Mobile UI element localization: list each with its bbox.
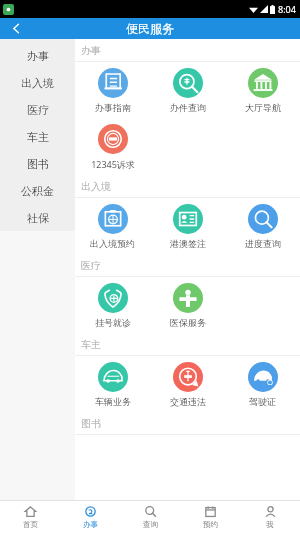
- button[interactable]: 我: [240, 501, 300, 533]
- staticText: 12345诉求: [91, 158, 135, 170]
- staticText: 便民服务: [126, 21, 174, 36]
- staticText: 办事指南: [95, 102, 131, 113]
- staticText: 首页: [23, 520, 38, 529]
- button[interactable]: 查询: [120, 501, 180, 533]
- button[interactable]: 挂号就诊: [75, 277, 150, 333]
- staticText: 医疗: [27, 103, 49, 117]
- staticText: 8:04: [278, 3, 296, 15]
- staticText: 查询: [143, 520, 158, 529]
- button[interactable]: 公积金: [0, 177, 75, 204]
- button[interactable]: 首页: [0, 501, 60, 533]
- button[interactable]: 进度查询: [225, 198, 300, 254]
- button[interactable]: 办事: [60, 501, 120, 533]
- button[interactable]: Back: [0, 18, 32, 39]
- staticText: 图书: [81, 417, 101, 430]
- button[interactable]: 预约: [180, 501, 240, 533]
- button[interactable]: 交通违法: [150, 356, 225, 412]
- button[interactable]: 出入境: [0, 69, 75, 96]
- button[interactable]: 医疗: [0, 96, 75, 123]
- staticText: 医疗: [81, 259, 101, 272]
- staticText: 挂号就诊: [95, 317, 131, 328]
- staticText: 公积金: [21, 184, 54, 198]
- staticText: 出入境预约: [90, 238, 135, 249]
- staticText: 办件查询: [170, 102, 206, 113]
- staticText: 办事: [27, 49, 49, 63]
- staticText: 图书: [27, 157, 49, 171]
- staticText: 办事: [83, 520, 98, 529]
- staticText: 车主: [81, 338, 101, 351]
- button[interactable]: 12345诉求: [75, 118, 150, 175]
- button[interactable]: 办事: [0, 42, 75, 69]
- staticText: 驾驶证: [249, 396, 276, 407]
- staticText: 交通违法: [170, 396, 206, 407]
- staticText: 我: [266, 520, 274, 529]
- button[interactable]: 车辆业务: [75, 356, 150, 412]
- button[interactable]: 港澳签注: [150, 198, 225, 254]
- button[interactable]: 车主: [0, 123, 75, 150]
- staticText: 出入境: [81, 180, 111, 193]
- staticText: 社保: [27, 211, 49, 225]
- button[interactable]: 办件查询: [150, 62, 225, 118]
- staticText: 车主: [27, 130, 49, 144]
- staticText: 大厅导航: [245, 102, 281, 113]
- staticText: 预约: [203, 520, 218, 529]
- button[interactable]: 社保: [0, 204, 75, 231]
- staticText: 车辆业务: [95, 396, 131, 407]
- staticText: 进度查询: [245, 238, 281, 249]
- button[interactable]: 出入境预约: [75, 198, 150, 254]
- staticText: 办事: [81, 44, 101, 57]
- button[interactable]: 医保服务: [150, 277, 225, 333]
- button[interactable]: 图书: [0, 150, 75, 177]
- staticText: 出入境: [21, 76, 54, 90]
- button[interactable]: 办事指南: [75, 62, 150, 118]
- button[interactable]: 驾驶证: [225, 356, 300, 412]
- staticText: 港澳签注: [170, 238, 206, 249]
- button[interactable]: 大厅导航: [225, 62, 300, 118]
- staticText: 医保服务: [170, 317, 206, 328]
